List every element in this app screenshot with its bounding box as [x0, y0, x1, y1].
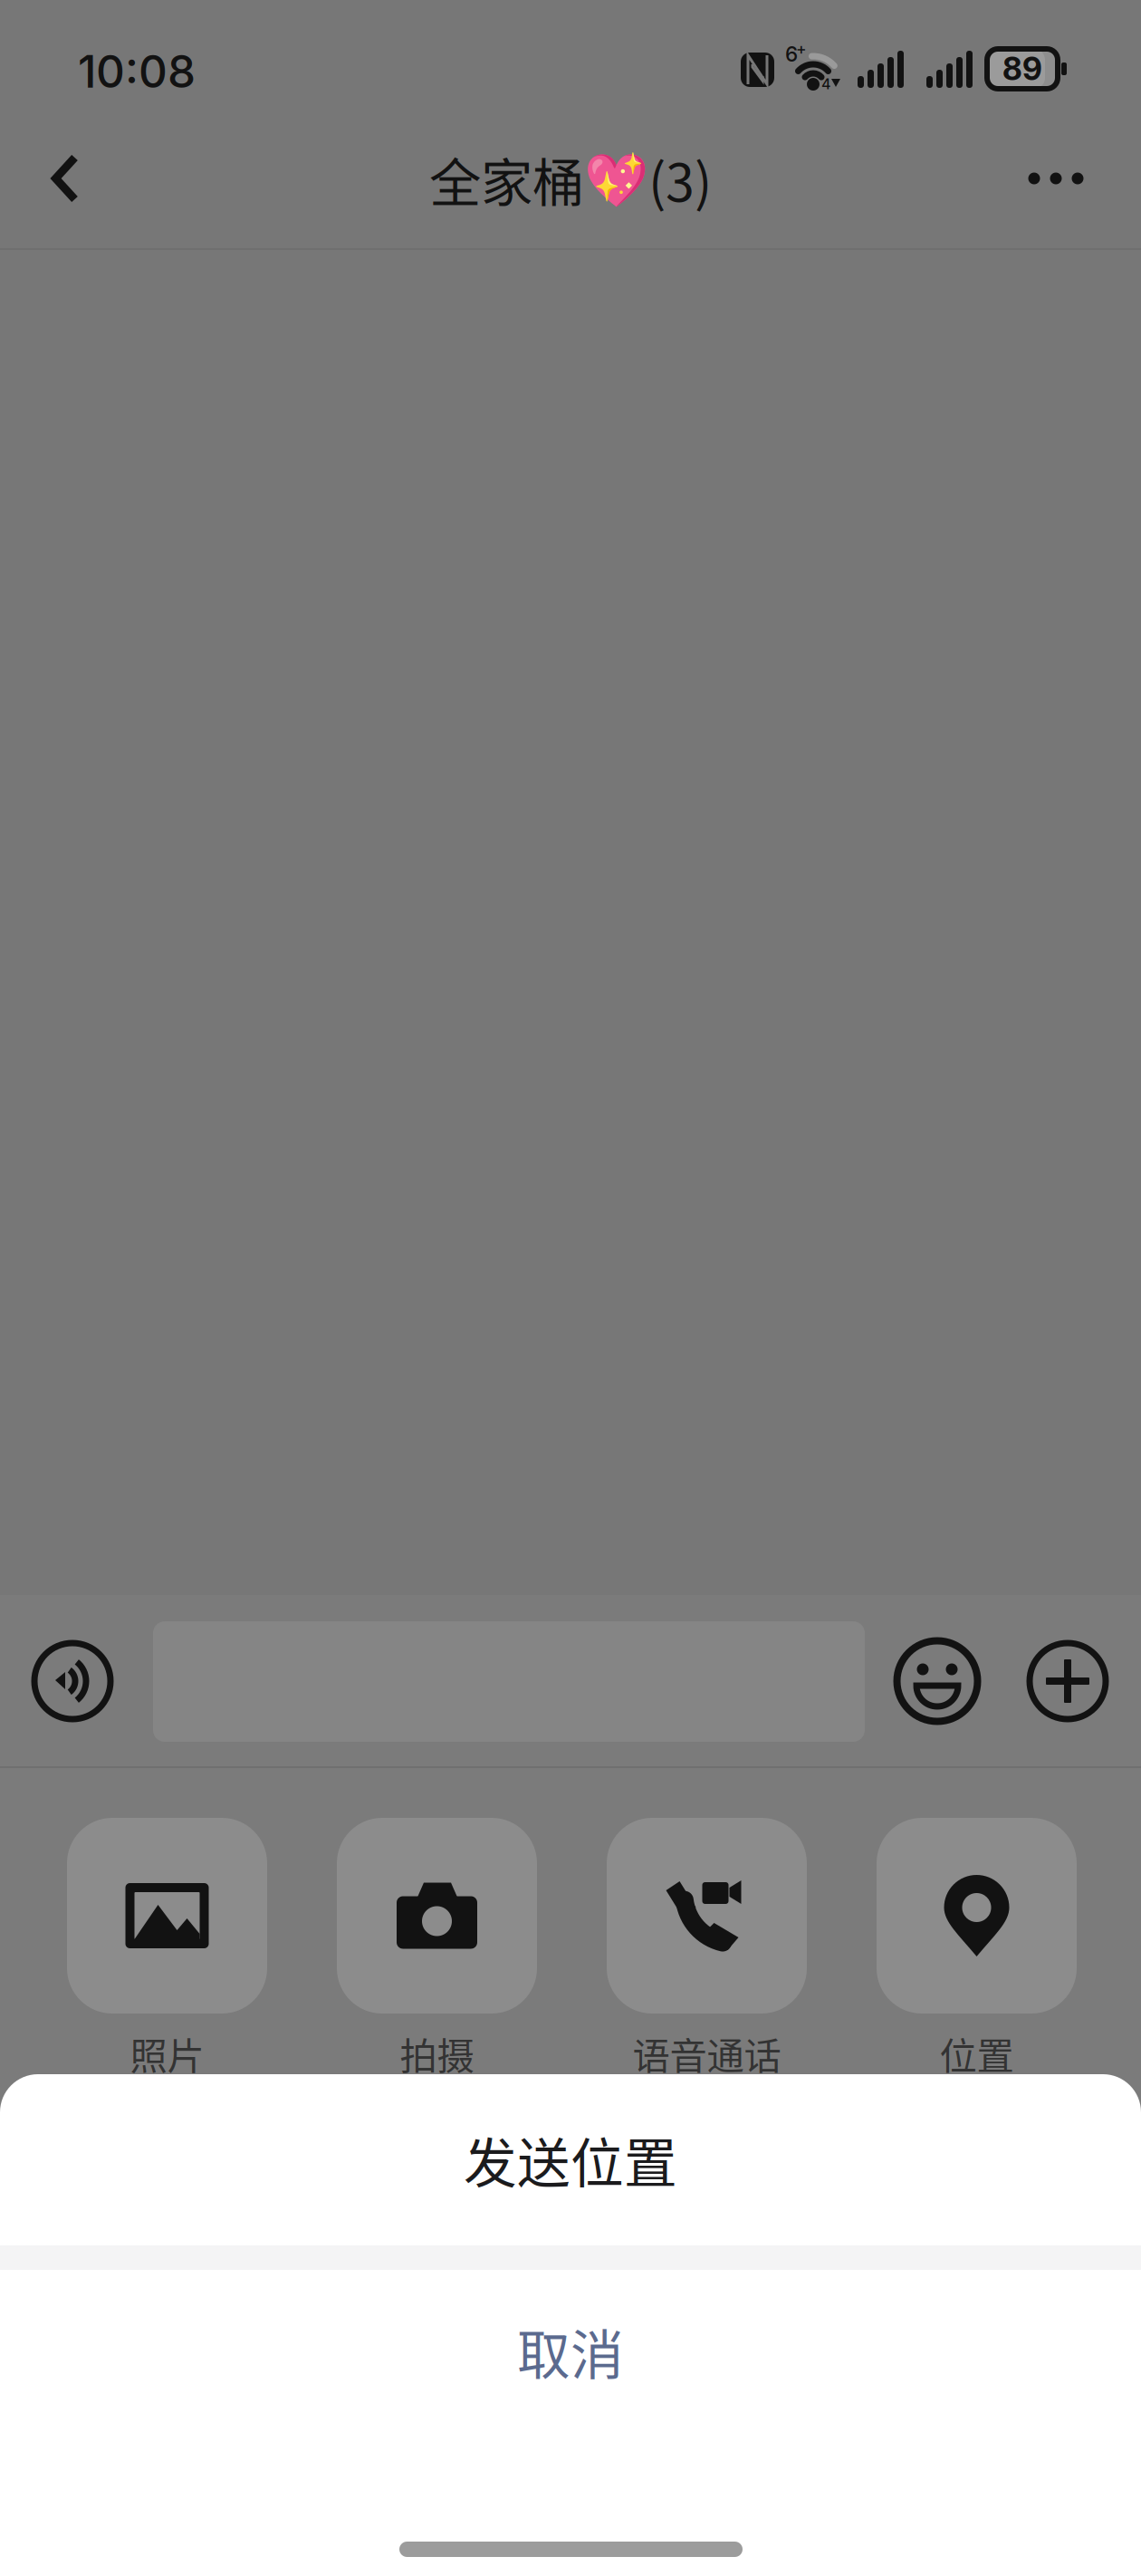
staticText: 照片	[130, 2026, 204, 2081]
staticText: 89	[1002, 50, 1042, 88]
staticText: 全家桶💖(3)	[429, 141, 712, 216]
staticText: 4	[821, 75, 831, 93]
staticText: 6	[785, 42, 798, 66]
staticText: 拍摄	[400, 2026, 474, 2081]
button[interactable]: 拍摄	[337, 1818, 537, 2082]
button[interactable]: More options	[1002, 125, 1109, 232]
staticText: 10:08	[78, 44, 196, 98]
staticText: 取消	[517, 2313, 624, 2390]
staticText: +	[796, 39, 807, 58]
button[interactable]: Voice message	[31, 1639, 114, 1723]
staticText: 语音通话	[633, 2026, 781, 2081]
button[interactable]: 位置	[877, 1818, 1077, 2082]
button[interactable]: 语音通话	[607, 1818, 807, 2082]
button[interactable]: 取消	[0, 2270, 1141, 2433]
button[interactable]: More actions	[1026, 1639, 1109, 1723]
button[interactable]: 照片	[67, 1818, 267, 2082]
staticText: 位置	[940, 2026, 1014, 2081]
staticText: 发送位置	[464, 2121, 677, 2198]
button[interactable]: 发送位置	[0, 2074, 1141, 2245]
button[interactable]: Back	[12, 125, 119, 232]
button[interactable]: Emoji keyboard	[896, 1639, 979, 1723]
